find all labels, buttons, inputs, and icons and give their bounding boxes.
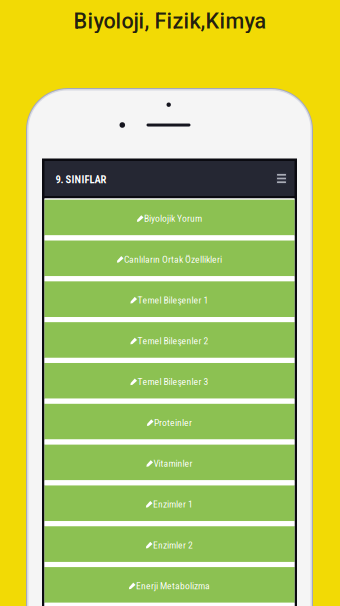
staticText: 9. SINIFLAR [55, 173, 106, 186]
button[interactable]: Canlıların Ortak Özellikleri [44, 240, 294, 276]
staticText: Biyolojik Yorum [144, 213, 202, 224]
staticText: Proteinler [154, 417, 192, 428]
button[interactable]: Enzimler 1 [44, 485, 294, 521]
button[interactable]: Proteinler [44, 404, 294, 439]
staticText: Biyoloji, Fizik,Kimya [73, 8, 266, 34]
staticText: Vitaminler [154, 458, 193, 469]
staticText: Enzimler 2 [153, 539, 193, 551]
button[interactable]: Temel Bileşenler 1 [44, 281, 294, 317]
button[interactable]: Enerji Metabolizma [44, 567, 294, 603]
staticText: Enzimler 1 [153, 499, 193, 510]
button[interactable]: Vitaminler [44, 445, 294, 480]
staticText: Temel Bileşenler 3 [138, 376, 209, 387]
staticText: Canlıların Ortak Özellikleri [124, 254, 222, 265]
button[interactable]: Temel Bileşenler 2 [44, 322, 294, 358]
staticText: Temel Bileşenler 1 [138, 295, 209, 306]
button[interactable]: Temel Bileşenler 3 [44, 363, 294, 399]
button[interactable]: Menu [276, 173, 287, 184]
button[interactable]: Biyolojik Yorum [44, 200, 294, 235]
staticText: Enerji Metabolizma [136, 580, 210, 592]
button[interactable]: Enzimler 2 [44, 526, 294, 562]
staticText: Temel Bileşenler 2 [138, 335, 209, 347]
